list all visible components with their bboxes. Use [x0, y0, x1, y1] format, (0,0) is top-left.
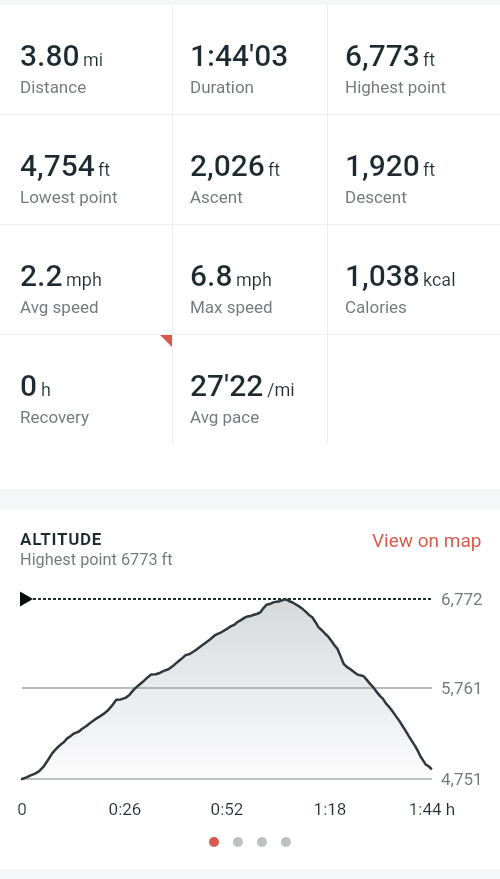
button[interactable]: 6,773	[328, 5, 500, 114]
staticText: 0:52	[182, 799, 272, 819]
staticText: 1,920	[345, 148, 420, 183]
button[interactable]: 6.8	[173, 225, 327, 334]
button[interactable]: View on map	[372, 529, 482, 551]
button[interactable]: Page 3	[257, 837, 267, 847]
staticText: 5,761	[441, 678, 483, 698]
staticText: Descent	[345, 187, 407, 207]
staticText: /mi	[267, 379, 295, 400]
staticText: kcal	[423, 269, 456, 290]
staticText: 2,026	[190, 148, 265, 183]
staticText: 0	[20, 368, 38, 403]
staticText: 2.2	[20, 258, 63, 293]
staticText: 27'22	[190, 368, 264, 403]
button[interactable]: 2.2	[0, 225, 172, 334]
button[interactable]: 1:44'03	[173, 5, 327, 114]
staticText: ft	[98, 159, 111, 180]
button[interactable]: Page 4	[281, 837, 291, 847]
staticText: 0	[0, 799, 67, 819]
staticText: 0:26	[80, 799, 170, 819]
button[interactable]: Page 2	[233, 837, 243, 847]
staticText: 1:18	[285, 799, 375, 819]
staticText: ft	[423, 159, 436, 180]
staticText: 6.8	[190, 258, 233, 293]
staticText: Lowest point	[20, 187, 118, 207]
staticText: Recovery	[20, 407, 90, 427]
button[interactable]: 3.80	[0, 5, 172, 114]
staticText: Avg speed	[20, 297, 99, 317]
staticText: 6,773	[345, 38, 420, 73]
other: Personal record	[160, 335, 172, 347]
staticText: h	[41, 379, 51, 400]
staticText: Max speed	[190, 297, 273, 317]
staticText: Avg pace	[190, 407, 260, 427]
staticText: 1,038	[345, 258, 420, 293]
staticText: ALTITUDE	[20, 529, 103, 549]
staticText: mi	[83, 49, 104, 70]
button[interactable]: 1,920	[328, 115, 500, 224]
staticText: mph	[236, 269, 272, 290]
staticText: mph	[66, 269, 102, 290]
staticText: ft	[268, 159, 281, 180]
button[interactable]: 4,754	[0, 115, 172, 224]
staticText: 1:44'03	[190, 38, 289, 73]
staticText: Highest point	[345, 77, 447, 97]
staticText: ft	[423, 49, 436, 70]
staticText: View on map	[372, 529, 482, 551]
staticText: Ascent	[190, 187, 243, 207]
button[interactable]: 2,026	[173, 115, 327, 224]
button[interactable]: Page 1	[209, 837, 219, 847]
button[interactable]: 0	[0, 335, 172, 444]
staticText: 3.80	[20, 38, 80, 73]
staticText: 1:44 h	[387, 799, 477, 819]
button[interactable]: 1,038	[328, 225, 500, 334]
staticText: Duration	[190, 77, 254, 97]
staticText: Calories	[345, 297, 407, 317]
staticText: 4,754	[20, 148, 95, 183]
staticText: 6,772	[441, 589, 483, 609]
staticText: Distance	[20, 77, 87, 97]
staticText: 4,751	[441, 769, 483, 789]
button[interactable]: 27'22	[173, 335, 327, 444]
staticText: Highest point 6773 ft	[20, 550, 173, 569]
